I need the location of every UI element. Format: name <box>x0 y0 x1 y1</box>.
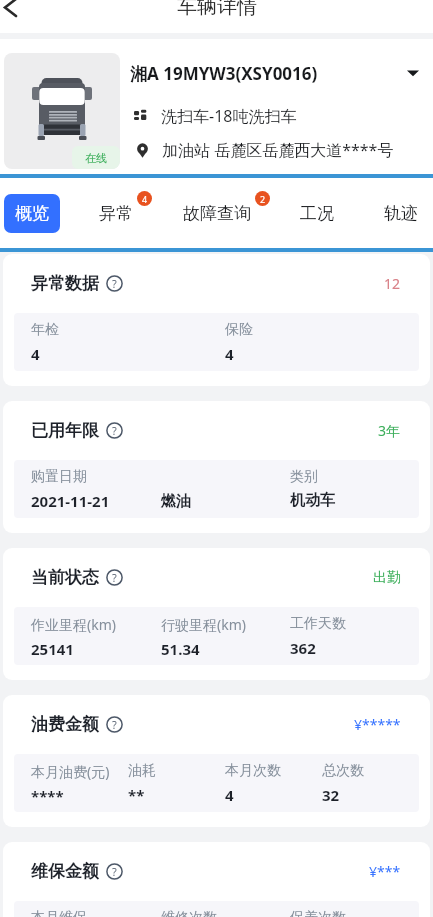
staticText: ¥*** <box>369 862 401 881</box>
staticText: 行驶里程(km) <box>161 615 246 634</box>
staticText: 购置日期 <box>31 468 87 486</box>
staticText: 保养次数 <box>290 909 346 917</box>
staticText: 本月次数 <box>225 762 281 780</box>
staticText: 在线 <box>85 151 107 165</box>
staticText: 工况 <box>300 203 334 224</box>
staticText: 32 <box>322 785 340 805</box>
staticText: 2021-11-21 <box>31 491 110 511</box>
staticText: 出勤 <box>373 569 401 587</box>
button[interactable]: 概览 <box>4 194 60 233</box>
button[interactable]: 异常 <box>88 194 144 233</box>
staticText: 当前状态 <box>31 567 99 588</box>
staticText: 异常 <box>99 203 133 224</box>
staticText: ¥***** <box>354 715 401 734</box>
button[interactable]: Back <box>0 0 28 24</box>
button[interactable]: 工况 <box>289 194 345 233</box>
button[interactable]: Expand <box>401 61 425 85</box>
staticText: ? <box>112 717 117 732</box>
staticText: 机动车 <box>290 491 335 510</box>
staticText: 概览 <box>15 203 49 224</box>
staticText: 4 <box>225 344 234 364</box>
staticText: 作业里程(km) <box>31 615 116 634</box>
staticText: 本月油费(元) <box>31 762 110 781</box>
staticText: 51.34 <box>161 639 200 659</box>
staticText: 工作天数 <box>290 615 346 633</box>
staticText: 已用年限 <box>31 420 99 441</box>
staticText: 油费金额 <box>31 714 99 735</box>
staticText: 轨迹 <box>384 203 418 224</box>
staticText: ** <box>128 785 145 805</box>
staticText: 2 <box>260 193 266 205</box>
staticText: 异常数据 <box>31 273 99 294</box>
staticText: 维保金额 <box>31 861 99 882</box>
staticText: 故障查询 <box>183 203 251 224</box>
staticText: 4 <box>142 193 148 205</box>
staticText: ? <box>112 864 117 879</box>
staticText: 总次数 <box>322 762 364 780</box>
staticText: 类别 <box>290 468 318 486</box>
staticText: **** <box>31 786 64 806</box>
staticText: 12 <box>384 274 401 293</box>
staticText: 维修次数 <box>161 909 217 917</box>
staticText: 4 <box>31 344 40 364</box>
staticText: ? <box>112 276 117 291</box>
staticText: 保险 <box>225 321 253 339</box>
staticText: 车辆详情 <box>177 0 257 19</box>
staticText: 25141 <box>31 639 74 659</box>
staticText: ? <box>112 423 117 438</box>
button[interactable]: 故障查询 <box>172 194 262 233</box>
staticText: 年检 <box>31 321 59 339</box>
staticText: 362 <box>290 638 316 658</box>
staticText: 3年 <box>378 421 401 440</box>
button[interactable]: 轨迹 <box>373 194 429 233</box>
staticText: 4 <box>225 785 234 805</box>
staticText: 本月维保 <box>31 909 87 917</box>
staticText: 加油站 岳麓区岳麓西大道****号 <box>162 139 394 161</box>
staticText: 油耗 <box>128 762 156 780</box>
staticText: 湘A 19MYW3(XSY0016) <box>130 62 318 85</box>
staticText: ? <box>112 570 117 585</box>
staticText: 燃油 <box>161 492 191 511</box>
staticText: 洗扫车-18吨洗扫车 <box>161 105 297 127</box>
